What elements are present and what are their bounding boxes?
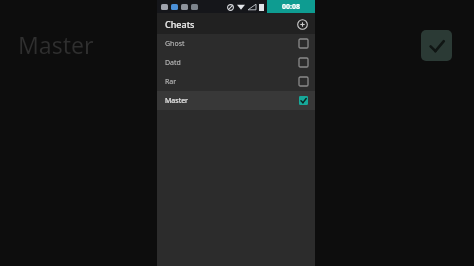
staticText: Master bbox=[165, 96, 188, 106]
button[interactable]: Rar bbox=[157, 72, 315, 91]
button[interactable]: Master bbox=[157, 91, 315, 110]
staticText: Ghost bbox=[165, 39, 185, 49]
staticText: 00:08 bbox=[282, 2, 300, 12]
staticText: Master bbox=[18, 29, 94, 60]
button[interactable]: Datd bbox=[157, 53, 315, 72]
staticText: Cheats bbox=[165, 18, 195, 30]
staticText: Rar bbox=[165, 77, 177, 87]
button[interactable]: Ghost bbox=[157, 34, 315, 53]
staticText: Datd bbox=[165, 58, 181, 68]
other: Enabled bbox=[421, 30, 452, 61]
button[interactable]: Add cheat bbox=[294, 16, 310, 32]
